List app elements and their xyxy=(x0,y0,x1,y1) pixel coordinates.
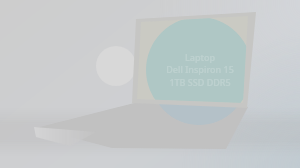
staticText: Laptop Dell Inspiron 15 1TB SSD DDR5 xyxy=(140,51,260,89)
